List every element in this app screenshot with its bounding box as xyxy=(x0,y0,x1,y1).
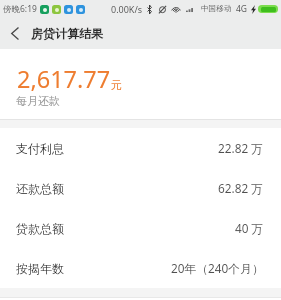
button[interactable]: 还款总额 xyxy=(0,168,281,208)
staticText: 4G xyxy=(236,3,248,15)
button[interactable]: 返回 xyxy=(0,18,28,49)
staticText: 中国移动 xyxy=(201,4,232,14)
staticText: 支付利息 xyxy=(16,141,64,156)
staticText: 0.00K/s xyxy=(111,3,143,15)
staticText: 还款总额 xyxy=(16,181,64,196)
staticText: 傍晚6:19 xyxy=(3,3,37,15)
staticText: 40 万 xyxy=(235,220,264,236)
staticText: 按揭年数 xyxy=(16,261,64,276)
staticText: 62.82 万 xyxy=(218,180,264,196)
staticText: 22.82 万 xyxy=(218,140,264,156)
button[interactable]: 支付利息 xyxy=(0,128,281,168)
staticText: 2,617.77 xyxy=(17,63,111,95)
button[interactable]: 按揭年数 xyxy=(0,248,281,288)
staticText: 房贷计算结果 xyxy=(31,26,103,41)
staticText: 每月还款 xyxy=(16,94,60,108)
button[interactable]: 贷款总额 xyxy=(0,208,281,248)
staticText: 20年（240个月） xyxy=(171,260,264,276)
staticText: 元 xyxy=(111,78,122,92)
staticText: 贷款总额 xyxy=(16,221,64,236)
